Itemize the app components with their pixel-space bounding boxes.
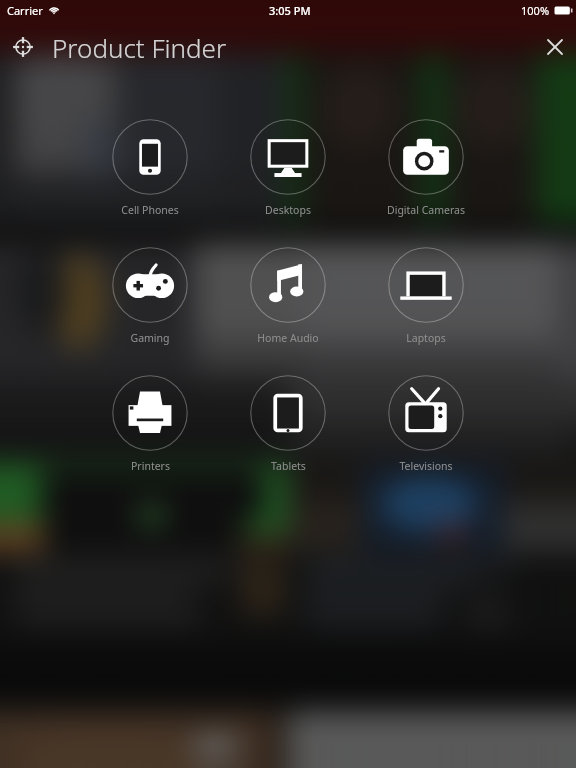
- staticText: Carrier: [7, 3, 43, 18]
- staticText: Televisions: [399, 459, 453, 473]
- button[interactable]: Close: [539, 31, 571, 63]
- staticText: Printers: [131, 459, 170, 473]
- staticText: Product Finder: [52, 30, 227, 65]
- button[interactable]: Gaming: [81, 247, 219, 345]
- button[interactable]: Printers: [81, 375, 219, 473]
- staticText: Laptops: [406, 331, 446, 345]
- button[interactable]: Digital Cameras: [357, 119, 495, 217]
- button[interactable]: Cell Phones: [81, 119, 219, 217]
- staticText: Desktops: [265, 203, 311, 217]
- button[interactable]: Tablets: [219, 375, 357, 473]
- staticText: Home Audio: [257, 331, 319, 345]
- staticText: Gaming: [130, 331, 170, 345]
- staticText: 3:05 PM: [269, 3, 311, 18]
- staticText: Cell Phones: [121, 203, 179, 217]
- button[interactable]: Home Audio: [219, 247, 357, 345]
- button[interactable]: Televisions: [357, 375, 495, 473]
- button[interactable]: Desktops: [219, 119, 357, 217]
- staticText: Tablets: [271, 459, 306, 473]
- button[interactable]: Laptops: [357, 247, 495, 345]
- button[interactable]: Locate: [6, 30, 40, 64]
- staticText: Digital Cameras: [387, 203, 465, 217]
- staticText: 100%: [521, 3, 550, 18]
